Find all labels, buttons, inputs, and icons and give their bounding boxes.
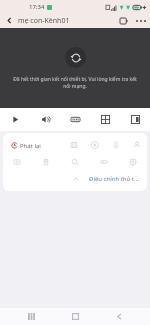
button[interactable]: Back xyxy=(0,13,18,28)
button[interactable]: Phát lại xyxy=(7,139,45,152)
staticText: Đã hết thời gian kết nối thiết bị. Vui l… xyxy=(10,76,140,90)
staticText: 17:34 xyxy=(29,3,45,11)
button[interactable]: Home xyxy=(64,308,86,325)
button[interactable]: Back xyxy=(108,308,130,325)
staticText: Phát lại xyxy=(20,142,41,150)
button[interactable]: Zoom xyxy=(60,153,89,171)
button[interactable]: Volume xyxy=(30,108,60,131)
button[interactable]: Split screen xyxy=(120,108,150,131)
button[interactable]: Record xyxy=(84,137,105,153)
staticText: Điều chỉnh thủ t… xyxy=(89,175,139,183)
button[interactable]: Điều chỉnh thủ t… xyxy=(3,171,147,187)
button[interactable]: Quality xyxy=(60,108,90,131)
button[interactable]: Play xyxy=(0,108,30,131)
button[interactable]: Settings xyxy=(118,153,147,171)
button[interactable]: Gallery xyxy=(63,137,84,153)
button[interactable]: Recent apps xyxy=(20,308,42,325)
button[interactable]: Alarm xyxy=(31,153,60,171)
button[interactable]: Cast to screen xyxy=(116,13,132,28)
staticText: mẹ con-Kênh01 xyxy=(18,16,70,26)
button[interactable]: More options xyxy=(132,13,150,28)
button[interactable]: Multi view xyxy=(90,108,120,131)
button[interactable]: Night vision xyxy=(89,153,118,171)
button[interactable]: Snapshot xyxy=(3,153,31,171)
button[interactable]: Retry connection xyxy=(65,47,86,68)
button[interactable]: Talk xyxy=(105,137,126,153)
button[interactable]: Visitors xyxy=(126,137,147,153)
